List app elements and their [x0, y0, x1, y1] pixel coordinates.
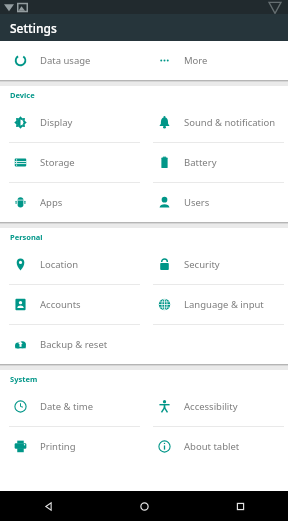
staticText: Users	[184, 196, 210, 209]
button[interactable]: Language & input	[144, 285, 288, 324]
button[interactable]: Accessibility	[144, 387, 288, 426]
button[interactable]: Location	[0, 245, 144, 284]
button[interactable]: Data usage	[0, 41, 144, 80]
button[interactable]: More	[144, 41, 288, 80]
staticText: Personal	[10, 232, 43, 242]
staticText: Printing	[40, 440, 76, 453]
button[interactable]: Home	[96, 491, 192, 521]
button[interactable]: Battery	[144, 143, 288, 182]
staticText: About tablet	[184, 440, 240, 453]
button[interactable]: Backup & reset	[0, 325, 144, 364]
staticText: Accessibility	[184, 400, 238, 413]
button[interactable]: About tablet	[144, 427, 288, 466]
button[interactable]: Back	[0, 491, 96, 521]
staticText: Accounts	[40, 298, 81, 311]
staticText: System	[10, 374, 38, 384]
staticText: Date & time	[40, 400, 94, 413]
staticText: Security	[184, 258, 220, 271]
staticText: Display	[40, 116, 73, 129]
staticText: Battery	[184, 156, 217, 169]
button[interactable]: Users	[144, 183, 288, 222]
staticText: Sound & notification	[184, 116, 276, 129]
button[interactable]: Printing	[0, 427, 144, 466]
staticText: Apps	[40, 196, 63, 209]
button[interactable]: Storage	[0, 143, 144, 182]
button[interactable]: Sound & notification	[144, 103, 288, 142]
staticText: Storage	[40, 156, 75, 169]
staticText: Device	[10, 90, 35, 100]
button[interactable]: Apps	[0, 183, 144, 222]
button[interactable]: Accounts	[0, 285, 144, 324]
staticText: Settings	[10, 20, 57, 36]
button[interactable]: Security	[144, 245, 288, 284]
staticText: More	[184, 54, 208, 67]
staticText: Data usage	[40, 54, 91, 67]
button[interactable]: Recent apps	[192, 491, 288, 521]
staticText: Location	[40, 258, 79, 271]
staticText: Language & input	[184, 298, 264, 311]
button[interactable]: Date & time	[0, 387, 144, 426]
staticText: Backup & reset	[40, 338, 108, 351]
button[interactable]: Display	[0, 103, 144, 142]
